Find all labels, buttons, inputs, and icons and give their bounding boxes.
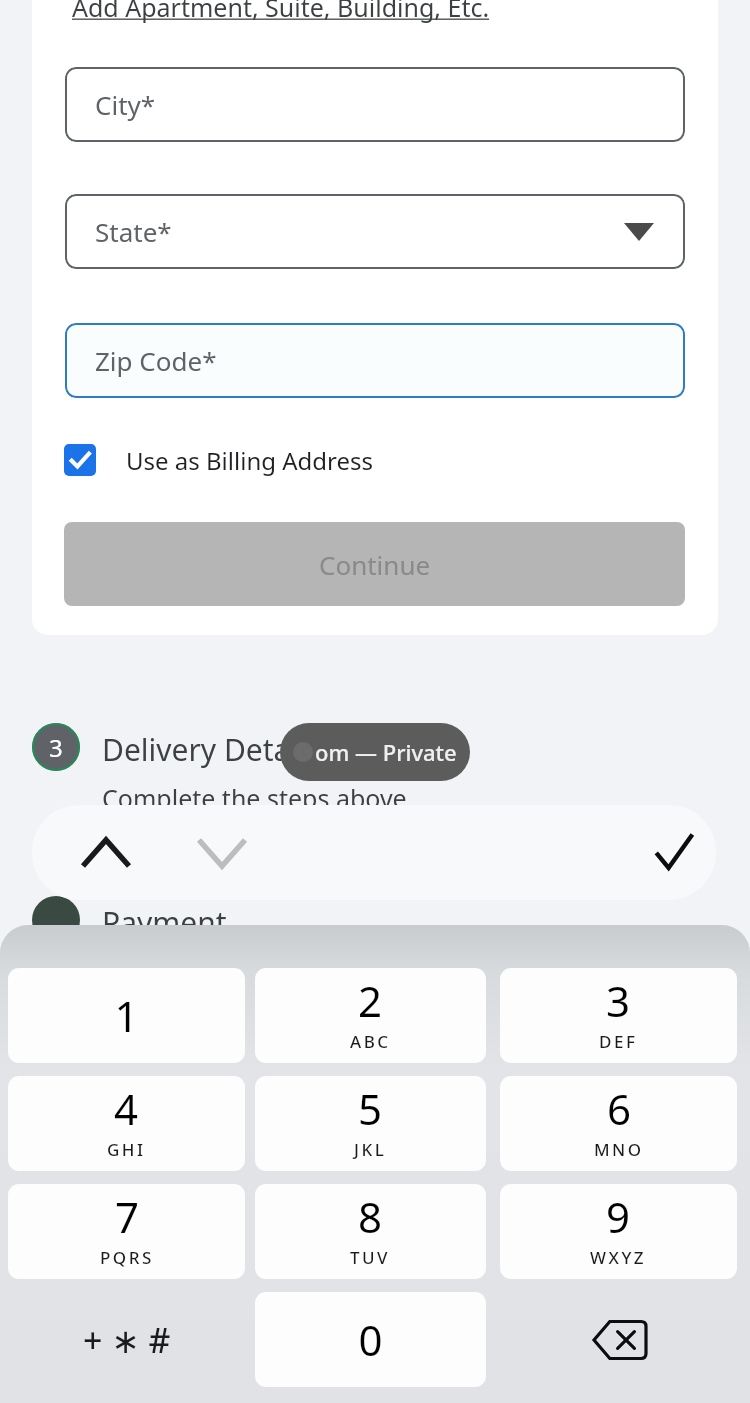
staticText: 3 (606, 972, 631, 1029)
button[interactable]: 1 (8, 968, 245, 1063)
staticText: GHI (107, 1138, 146, 1161)
staticText: State* (95, 214, 172, 249)
button[interactable]: 4 (8, 1076, 245, 1171)
staticText: 6 (607, 1080, 632, 1137)
button[interactable]: Symbols (8, 1292, 245, 1387)
staticText: + ∗ # (83, 1317, 171, 1363)
staticText: 0 (358, 1311, 383, 1368)
button[interactable]: 7 (8, 1184, 245, 1279)
button[interactable]: State* (65, 194, 685, 269)
staticText: om — Private (315, 737, 457, 767)
staticText: Continue (319, 547, 431, 582)
staticText: JKL (354, 1138, 387, 1161)
button[interactable]: Use as Billing Address (56, 436, 382, 484)
staticText: 5 (358, 1080, 383, 1137)
button[interactable]: 5 (255, 1076, 486, 1171)
button[interactable]: 2 (255, 968, 486, 1063)
button[interactable]: Done (642, 821, 704, 883)
staticText: Delivery Details (102, 729, 321, 770)
button[interactable]: Next field (192, 823, 252, 883)
button[interactable]: Continue (64, 522, 685, 606)
button[interactable]: 3 (500, 968, 737, 1063)
staticText: Use as Billing Address (126, 444, 374, 477)
staticText: 3 (49, 731, 63, 764)
staticText: 8 (358, 1188, 383, 1245)
button[interactable]: Backspace (500, 1292, 737, 1387)
other: Open state list (623, 216, 655, 248)
staticText: Add Apartment, Suite, Building, Etc. (72, 0, 490, 24)
staticText: 1 (114, 987, 139, 1044)
staticText: Payment (102, 902, 227, 943)
staticText: 9 (606, 1188, 631, 1245)
staticText: 7 (115, 1188, 140, 1245)
staticText: 2 (358, 972, 383, 1029)
button[interactable]: 8 (255, 1184, 486, 1279)
button[interactable]: 9 (500, 1184, 737, 1279)
staticText: City* (95, 87, 156, 122)
button[interactable]: Previous field (76, 823, 136, 883)
button[interactable]: Add Apartment, Suite, Building, Etc. (64, 0, 498, 28)
button[interactable]: 0 (255, 1292, 486, 1387)
button[interactable]: Zip Code* (65, 323, 685, 398)
staticText: ABC (350, 1030, 391, 1053)
staticText: Complete the steps above (102, 781, 407, 815)
staticText: DEF (599, 1030, 638, 1053)
button[interactable]: 6 (500, 1076, 737, 1171)
staticText: 4 (114, 1080, 139, 1137)
staticText: MNO (594, 1138, 644, 1161)
staticText: TUV (350, 1246, 391, 1269)
staticText: WXYZ (590, 1246, 647, 1269)
staticText: PQRS (100, 1246, 154, 1269)
button[interactable]: City* (65, 67, 685, 142)
staticText: Zip Code* (95, 343, 217, 378)
